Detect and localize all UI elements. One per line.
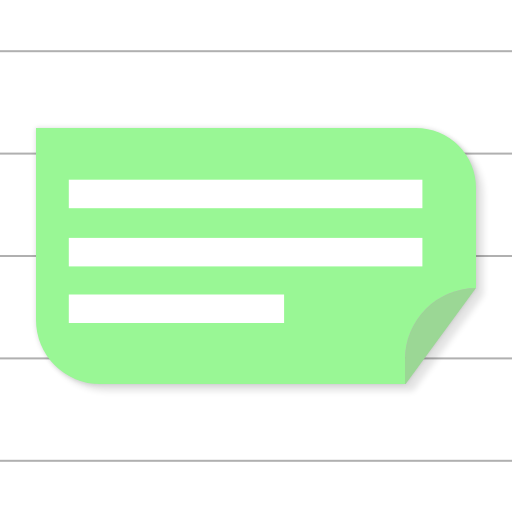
button[interactable]: Messages [0, 0, 512, 512]
